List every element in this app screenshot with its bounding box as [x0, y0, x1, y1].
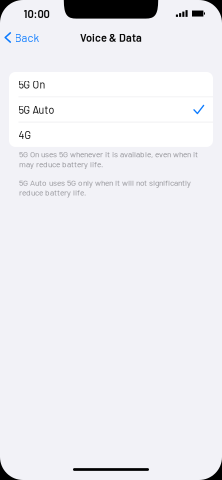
staticText: 5G On uses 5G whenever it is available, …	[19, 149, 198, 169]
button[interactable]: 5G Auto	[9, 97, 213, 122]
button[interactable]: Back	[0, 27, 45, 48]
staticText: 5G Auto	[18, 103, 54, 116]
staticText: 4G	[18, 128, 31, 141]
staticText: 10:00	[23, 7, 49, 20]
staticText: Back	[14, 31, 39, 44]
staticText: 5G Auto uses 5G only when it will not si…	[19, 177, 191, 197]
button[interactable]: 4G	[9, 122, 213, 147]
staticText: 5G On	[18, 78, 45, 91]
button[interactable]: 5G On	[9, 72, 213, 97]
staticText: Voice & Data	[80, 31, 142, 44]
